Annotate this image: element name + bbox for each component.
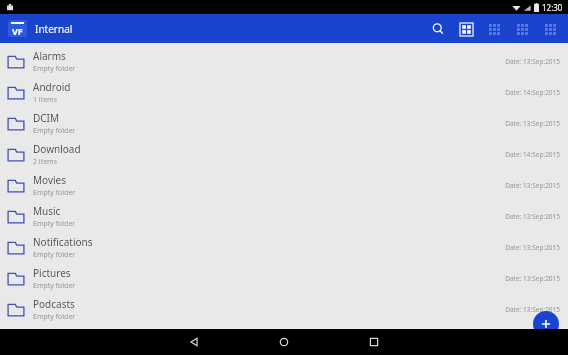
button[interactable]: Download — [0, 139, 568, 170]
staticText: 2 items — [33, 157, 58, 167]
button[interactable]: Movies — [0, 170, 568, 201]
button[interactable]: Android — [0, 77, 568, 108]
staticText: Empty folder — [33, 312, 76, 322]
staticText: Empty folder — [33, 281, 76, 291]
button[interactable]: Podcasts — [0, 294, 568, 325]
staticText: Date: 13:Sep:2015 — [505, 181, 560, 190]
button[interactable]: View mode 3 — [508, 15, 536, 43]
staticText: Empty folder — [33, 126, 76, 136]
staticText: Android — [33, 80, 71, 94]
staticText: Empty folder — [33, 219, 76, 229]
button[interactable]: Grid view, selected — [452, 15, 480, 43]
button[interactable]: DCIM — [0, 108, 568, 139]
staticText: Podcasts — [33, 297, 75, 311]
staticText: Notifications — [33, 235, 93, 249]
staticText: Empty folder — [33, 188, 76, 198]
staticText: 1 items — [33, 95, 58, 105]
button[interactable]: Search — [424, 15, 452, 43]
staticText: VF — [12, 25, 23, 37]
staticText: Download — [33, 142, 81, 156]
button[interactable]: Music — [0, 201, 568, 232]
staticText: Date: 13:Sep:2015 — [505, 212, 560, 221]
staticText: Date: 14:Sep:2015 — [505, 88, 560, 97]
staticText: Date: 13:Sep:2015 — [505, 305, 560, 314]
staticText: DCIM — [33, 111, 60, 125]
staticText: Date: 13:Sep:2015 — [505, 119, 560, 128]
staticText: Date: 13:Sep:2015 — [505, 243, 560, 252]
staticText: Empty folder — [33, 64, 76, 74]
staticText: Date: 13:Sep:2015 — [505, 57, 560, 66]
button[interactable]: Home — [262, 329, 306, 355]
button[interactable]: View mode 4 — [536, 15, 564, 43]
staticText: Date: 13:Sep:2015 — [505, 274, 560, 283]
button[interactable]: Add — [533, 311, 559, 337]
button[interactable]: Vault File, open navigation — [8, 20, 27, 37]
staticText: Movies — [33, 173, 67, 187]
button[interactable]: View mode 2 — [480, 15, 508, 43]
button[interactable]: Notifications — [0, 232, 568, 263]
staticText: Alarms — [33, 49, 66, 63]
button[interactable]: Alarms — [0, 46, 568, 77]
staticText: Pictures — [33, 266, 71, 280]
staticText: Internal — [35, 22, 73, 36]
staticText: Empty folder — [33, 250, 76, 260]
staticText: Date: 14:Sep:2015 — [505, 150, 560, 159]
staticText: 12:30 — [542, 2, 563, 13]
button[interactable]: Pictures — [0, 263, 568, 294]
button[interactable]: Back — [172, 329, 216, 355]
button[interactable]: Recent apps — [352, 329, 396, 355]
staticText: Music — [33, 204, 61, 218]
